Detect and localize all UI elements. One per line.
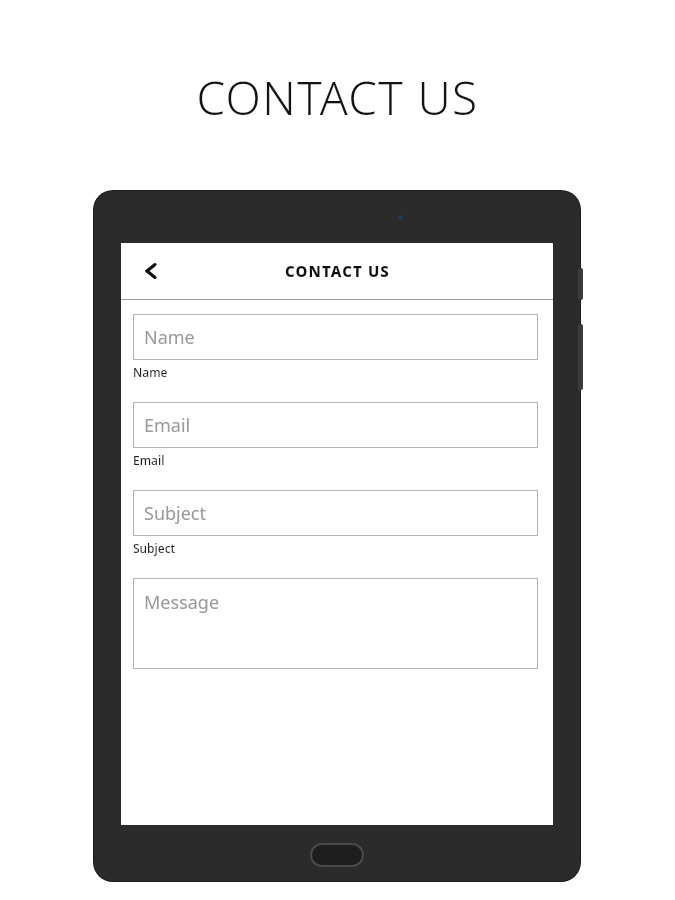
- button[interactable]: Email: [133, 402, 538, 448]
- staticText: Subject: [133, 540, 176, 556]
- staticText: Message: [144, 590, 220, 615]
- staticText: Name: [144, 325, 195, 350]
- button[interactable]: Message: [133, 578, 538, 669]
- button[interactable]: Subject: [133, 490, 538, 536]
- button[interactable]: Back: [129, 249, 173, 293]
- staticText: Email: [144, 413, 191, 438]
- staticText: Subject: [144, 501, 207, 526]
- staticText: CONTACT US: [285, 261, 390, 281]
- staticText: Name: [133, 364, 168, 380]
- staticText: Email: [133, 452, 165, 468]
- button[interactable]: Name: [133, 314, 538, 360]
- staticText: CONTACT US: [196, 66, 479, 128]
- button[interactable]: Home: [310, 843, 364, 867]
